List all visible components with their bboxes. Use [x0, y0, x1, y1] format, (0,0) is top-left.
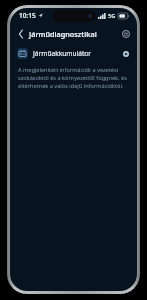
button[interactable]: Járműakkumulátor [10, 45, 137, 61]
staticText: 5G [108, 12, 116, 19]
staticText: 10:15 [19, 11, 36, 20]
staticText: A megjelenített információk a vezetési s… [18, 66, 127, 90]
button[interactable]: Információ [119, 27, 132, 40]
staticText: Járműakkumulátor [33, 49, 121, 58]
staticText: Járműdiagnosztikai részletek [29, 29, 117, 39]
button[interactable]: Vissza [15, 27, 27, 41]
